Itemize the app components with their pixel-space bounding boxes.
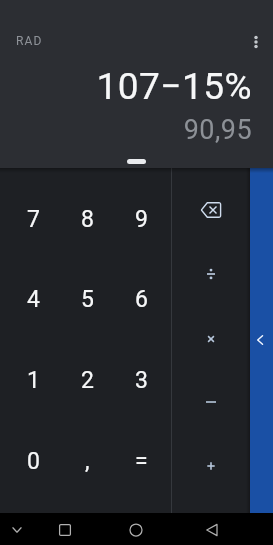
- button[interactable]: Hide keyboard: [0, 514, 40, 545]
- button[interactable]: Backspace: [172, 178, 250, 242]
- staticText: 5: [81, 286, 94, 313]
- button[interactable]: 1: [6, 340, 60, 421]
- button[interactable]: 5: [60, 259, 114, 340]
- button[interactable]: 6: [114, 259, 168, 340]
- button[interactable]: 8: [60, 179, 114, 260]
- staticText: 107−15%: [0, 65, 252, 108]
- button[interactable]: Home: [113, 514, 159, 545]
- button[interactable]: Multiply: [172, 307, 250, 371]
- button[interactable]: Show more functions: [250, 168, 273, 513]
- button[interactable]: 3: [114, 340, 168, 421]
- button[interactable]: Plus: [172, 434, 250, 498]
- button[interactable]: =: [114, 421, 168, 502]
- staticText: 7: [27, 206, 40, 233]
- button[interactable]: Back: [189, 514, 235, 545]
- staticText: 3: [135, 367, 148, 394]
- button[interactable]: 7: [6, 179, 60, 260]
- button[interactable]: More options: [240, 26, 272, 58]
- button[interactable]: ,: [60, 421, 114, 502]
- staticText: 2: [81, 367, 94, 394]
- staticText: 0: [27, 448, 40, 475]
- button[interactable]: 9: [114, 179, 168, 260]
- button[interactable]: Recents: [42, 514, 88, 545]
- staticText: 90,95: [0, 114, 252, 146]
- staticText: =: [135, 448, 148, 475]
- button[interactable]: 2: [60, 340, 114, 421]
- staticText: 8: [81, 206, 94, 233]
- staticText: 6: [135, 286, 148, 313]
- staticText: 1: [27, 367, 40, 394]
- staticText: 9: [135, 206, 148, 233]
- staticText: RAD: [16, 34, 43, 48]
- button[interactable]: Minus: [172, 370, 250, 434]
- staticText: 4: [27, 286, 40, 313]
- button[interactable]: 0: [6, 421, 60, 502]
- staticText: ,: [85, 448, 90, 475]
- button[interactable]: 4: [6, 259, 60, 340]
- button[interactable]: Divide: [172, 242, 250, 306]
